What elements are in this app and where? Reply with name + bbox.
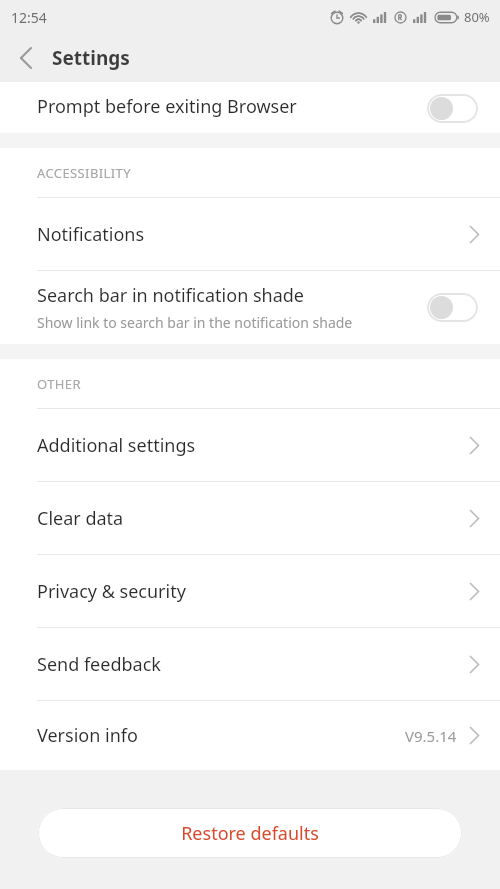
button[interactable]: Toggle [427, 94, 478, 123]
staticText: 80% [464, 8, 490, 26]
staticText: 12:54 [11, 8, 47, 27]
staticText: Additional settings [37, 433, 469, 458]
staticText: Clear data [37, 506, 469, 531]
staticText: Restore defaults [181, 821, 319, 846]
button[interactable]: Notifications [0, 198, 500, 270]
staticText: V9.5.14 [405, 726, 457, 746]
button[interactable]: Version info [0, 701, 500, 770]
staticText: Notifications [37, 222, 469, 247]
button[interactable]: Additional settings [0, 409, 500, 481]
staticText: Search bar in notification shade [37, 283, 305, 308]
staticText: Version info [37, 723, 405, 748]
button[interactable]: Search bar in notification shade [0, 271, 500, 344]
staticText: ACCESSIBILITY [37, 164, 131, 182]
staticText: Prompt before exiting Browser [37, 94, 297, 119]
button[interactable]: Prompt before exiting Browser [0, 82, 500, 133]
staticText: Show link to search bar in the notificat… [37, 313, 353, 332]
staticText: Send feedback [37, 652, 469, 677]
staticText: Settings [52, 45, 130, 71]
button[interactable]: Restore defaults [38, 808, 462, 858]
button[interactable]: Back [0, 34, 52, 82]
button[interactable]: Send feedback [0, 628, 500, 700]
staticText: Privacy & security [37, 579, 469, 604]
button[interactable]: Privacy & security [0, 555, 500, 627]
button[interactable]: Toggle [427, 293, 478, 322]
staticText: OTHER [37, 375, 81, 393]
button[interactable]: Clear data [0, 482, 500, 554]
